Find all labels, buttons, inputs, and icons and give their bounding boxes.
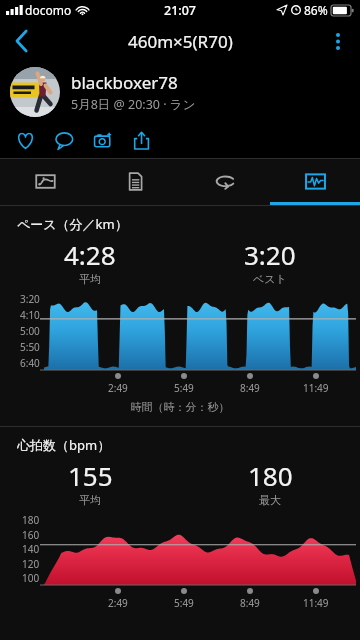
staticText: 平均 [79,493,101,507]
staticText: 21:07 [164,2,197,19]
staticText: 160 [22,528,40,542]
button[interactable]: Charts [270,158,360,205]
staticText: 100 [22,571,40,585]
staticText: 11:49 [303,596,329,610]
staticText: 最大 [259,493,281,507]
staticText: 心拍数（bpm） [17,436,111,454]
staticText: 5:49 [174,381,194,395]
staticText: 5:49 [174,596,194,610]
staticText: 120 [22,557,40,571]
staticText: docomo [25,2,72,18]
button[interactable]: Map [0,158,90,205]
staticText: 180 [248,458,293,493]
staticText: 155 [68,458,113,493]
staticText: 4:28 [64,237,116,272]
staticText: 460m×5(R70) [128,30,233,53]
staticText: 5:00 [20,324,40,338]
staticText: 8:49 [240,381,260,395]
staticText: blackboxer78 [71,71,178,94]
button[interactable]: Comment [50,126,78,154]
button[interactable]: Details [90,158,180,205]
button[interactable]: Add photo [89,126,117,154]
staticText: 2:49 [108,381,128,395]
staticText: ベスト [253,272,287,286]
button[interactable]: Share [128,126,156,154]
staticText: 5月8日 @ 20:30 · ラン [71,96,196,113]
staticText: 4:10 [20,308,40,322]
staticText: 2:49 [108,596,128,610]
staticText: 3:20 [244,237,296,272]
staticText: 5:50 [20,340,40,354]
button[interactable]: Laps [180,158,270,205]
staticText: ペース（分／km） [17,215,128,233]
button[interactable]: More options [316,20,360,62]
button[interactable]: Like [11,126,39,154]
button[interactable]: blackboxer78 [0,62,360,122]
staticText: 3:20 [20,292,40,306]
staticText: 平均 [79,272,101,286]
staticText: 6:40 [20,356,40,370]
staticText: 8:49 [240,596,260,610]
staticText: 11:49 [303,381,329,395]
staticText: 86% [304,2,328,18]
staticText: 180 [22,513,40,527]
staticText: 140 [22,542,40,556]
staticText: 時間（時：分：秒） [0,400,360,414]
button[interactable]: Back [0,20,44,62]
